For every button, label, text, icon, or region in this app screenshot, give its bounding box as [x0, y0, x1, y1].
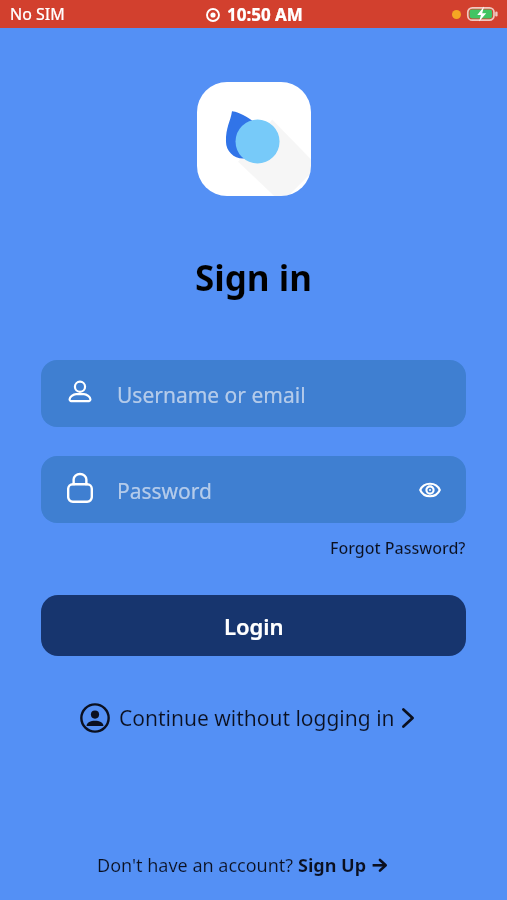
- staticText: Username or email: [117, 381, 306, 410]
- button[interactable]: Login: [41, 595, 466, 656]
- staticText: Forgot Password?: [330, 537, 466, 559]
- button[interactable]: Don't have an account?: [97, 853, 387, 877]
- staticText: No SIM: [10, 3, 65, 25]
- staticText: Sign in: [195, 254, 312, 302]
- button[interactable]: Forgot Password?: [330, 537, 466, 559]
- staticText: Login: [224, 611, 284, 641]
- button[interactable]: Username or email: [41, 360, 466, 427]
- button[interactable]: Continue without logging in: [80, 703, 414, 733]
- staticText: 10:50 AM: [227, 3, 303, 26]
- button[interactable]: Password: [41, 456, 466, 523]
- staticText: Continue without logging in: [119, 704, 395, 733]
- button[interactable]: Show password: [418, 478, 442, 502]
- staticText: Sign Up: [298, 853, 367, 877]
- staticText: Don't have an account?: [97, 853, 298, 877]
- staticText: Password: [117, 477, 212, 506]
